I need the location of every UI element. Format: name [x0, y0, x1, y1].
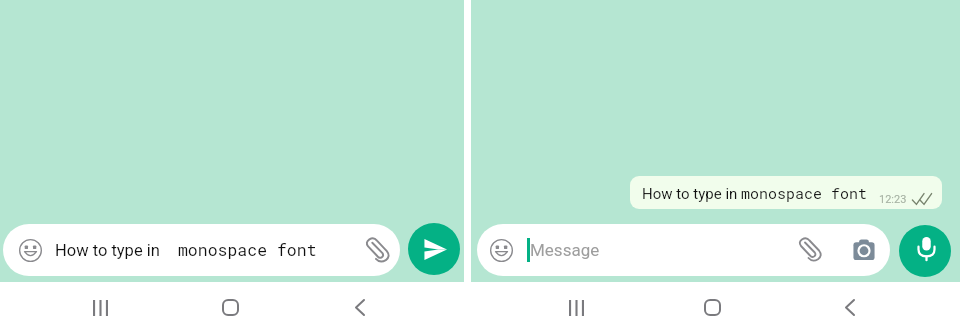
button[interactable]: Emoji	[477, 224, 890, 276]
button[interactable]: Send	[408, 223, 460, 275]
button[interactable]: Back	[828, 282, 872, 333]
button[interactable]: Emoji	[19, 239, 42, 262]
button[interactable]: How to type in monospace font	[630, 176, 942, 209]
staticText: How to type in monospace font	[55, 239, 317, 261]
button[interactable]: Recents	[554, 282, 598, 333]
button[interactable]: Home	[208, 282, 252, 333]
staticText: 12:23	[879, 193, 907, 206]
staticText: How to type in monospace font	[642, 183, 868, 203]
button[interactable]: Emoji	[490, 239, 513, 262]
button[interactable]: Camera	[852, 238, 876, 260]
button[interactable]: Back	[338, 282, 382, 333]
button[interactable]: Emoji	[3, 224, 400, 276]
button[interactable]: Voice message	[899, 225, 951, 277]
button[interactable]: Home	[690, 282, 734, 333]
button[interactable]: Attach	[365, 236, 391, 262]
button[interactable]: Recents	[78, 282, 122, 333]
staticText: Message	[530, 240, 600, 260]
button[interactable]: Attach	[798, 236, 823, 261]
